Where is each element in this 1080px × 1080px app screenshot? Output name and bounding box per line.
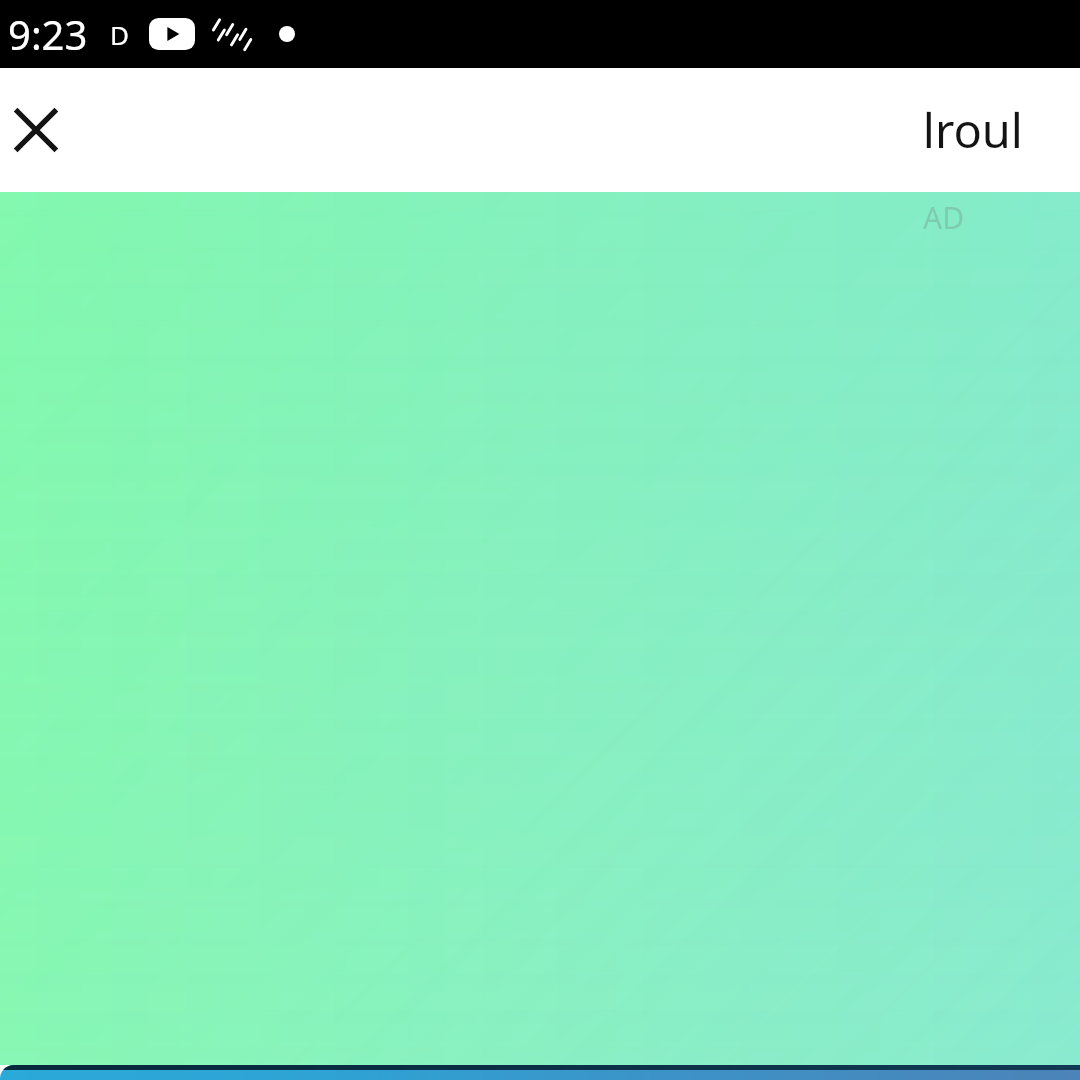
staticText: lroul — [922, 98, 1023, 162]
button[interactable]: Close — [0, 93, 73, 167]
staticText: D — [110, 17, 129, 52]
staticText: 9:23 — [8, 7, 88, 61]
button[interactable]: Advertisement — [0, 192, 1080, 1065]
staticText: AD — [923, 197, 965, 238]
